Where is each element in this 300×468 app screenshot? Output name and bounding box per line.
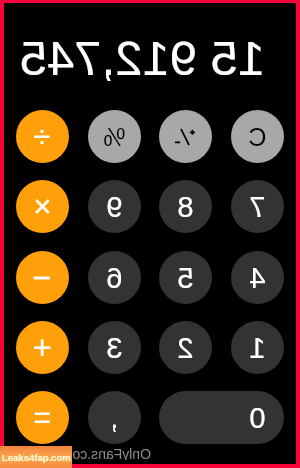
- staticText: 2: [177, 332, 194, 364]
- staticText: 9: [106, 191, 123, 223]
- staticText: 6: [106, 262, 123, 294]
- button[interactable]: 2: [159, 321, 212, 374]
- staticText: 15 912,745: [19, 31, 265, 86]
- staticText: ÷: [33, 119, 51, 154]
- button[interactable]: 7: [231, 180, 284, 233]
- button[interactable]: Minus: [16, 251, 69, 304]
- staticText: +: [32, 329, 52, 366]
- button[interactable]: 0: [159, 391, 284, 444]
- staticText: 1: [249, 332, 266, 364]
- staticText: 0: [249, 402, 266, 434]
- button[interactable]: Plus: [16, 321, 69, 374]
- button[interactable]: 9: [88, 180, 141, 233]
- staticText: OnlyFans.com: [71, 446, 151, 460]
- button[interactable]: Divide: [16, 110, 69, 163]
- staticText: 8: [177, 191, 194, 223]
- staticText: =: [33, 400, 52, 435]
- button[interactable]: 3: [88, 321, 141, 374]
- staticText: 3: [106, 332, 123, 364]
- button[interactable]: %: [88, 110, 141, 163]
- staticText: 4: [249, 262, 266, 294]
- staticText: C: [248, 123, 267, 151]
- button[interactable]: Clear: [231, 110, 284, 163]
- button[interactable]: Plus minus: [159, 110, 212, 163]
- button[interactable]: 1: [231, 321, 284, 374]
- staticText: ×: [33, 189, 52, 224]
- button[interactable]: 4: [231, 251, 284, 304]
- button[interactable]: 6: [88, 251, 141, 304]
- button[interactable]: Decimal: [88, 391, 141, 444]
- staticText: ,: [110, 402, 119, 434]
- button[interactable]: 5: [159, 251, 212, 304]
- button[interactable]: Multiply: [16, 180, 69, 233]
- staticText: %: [103, 123, 126, 151]
- staticText: 7: [249, 191, 266, 223]
- staticText: −: [32, 259, 52, 296]
- button[interactable]: Equals: [16, 391, 69, 444]
- staticText: 5: [177, 262, 194, 294]
- button[interactable]: 8: [159, 180, 212, 233]
- staticText: Leaks4fap.com: [2, 452, 71, 463]
